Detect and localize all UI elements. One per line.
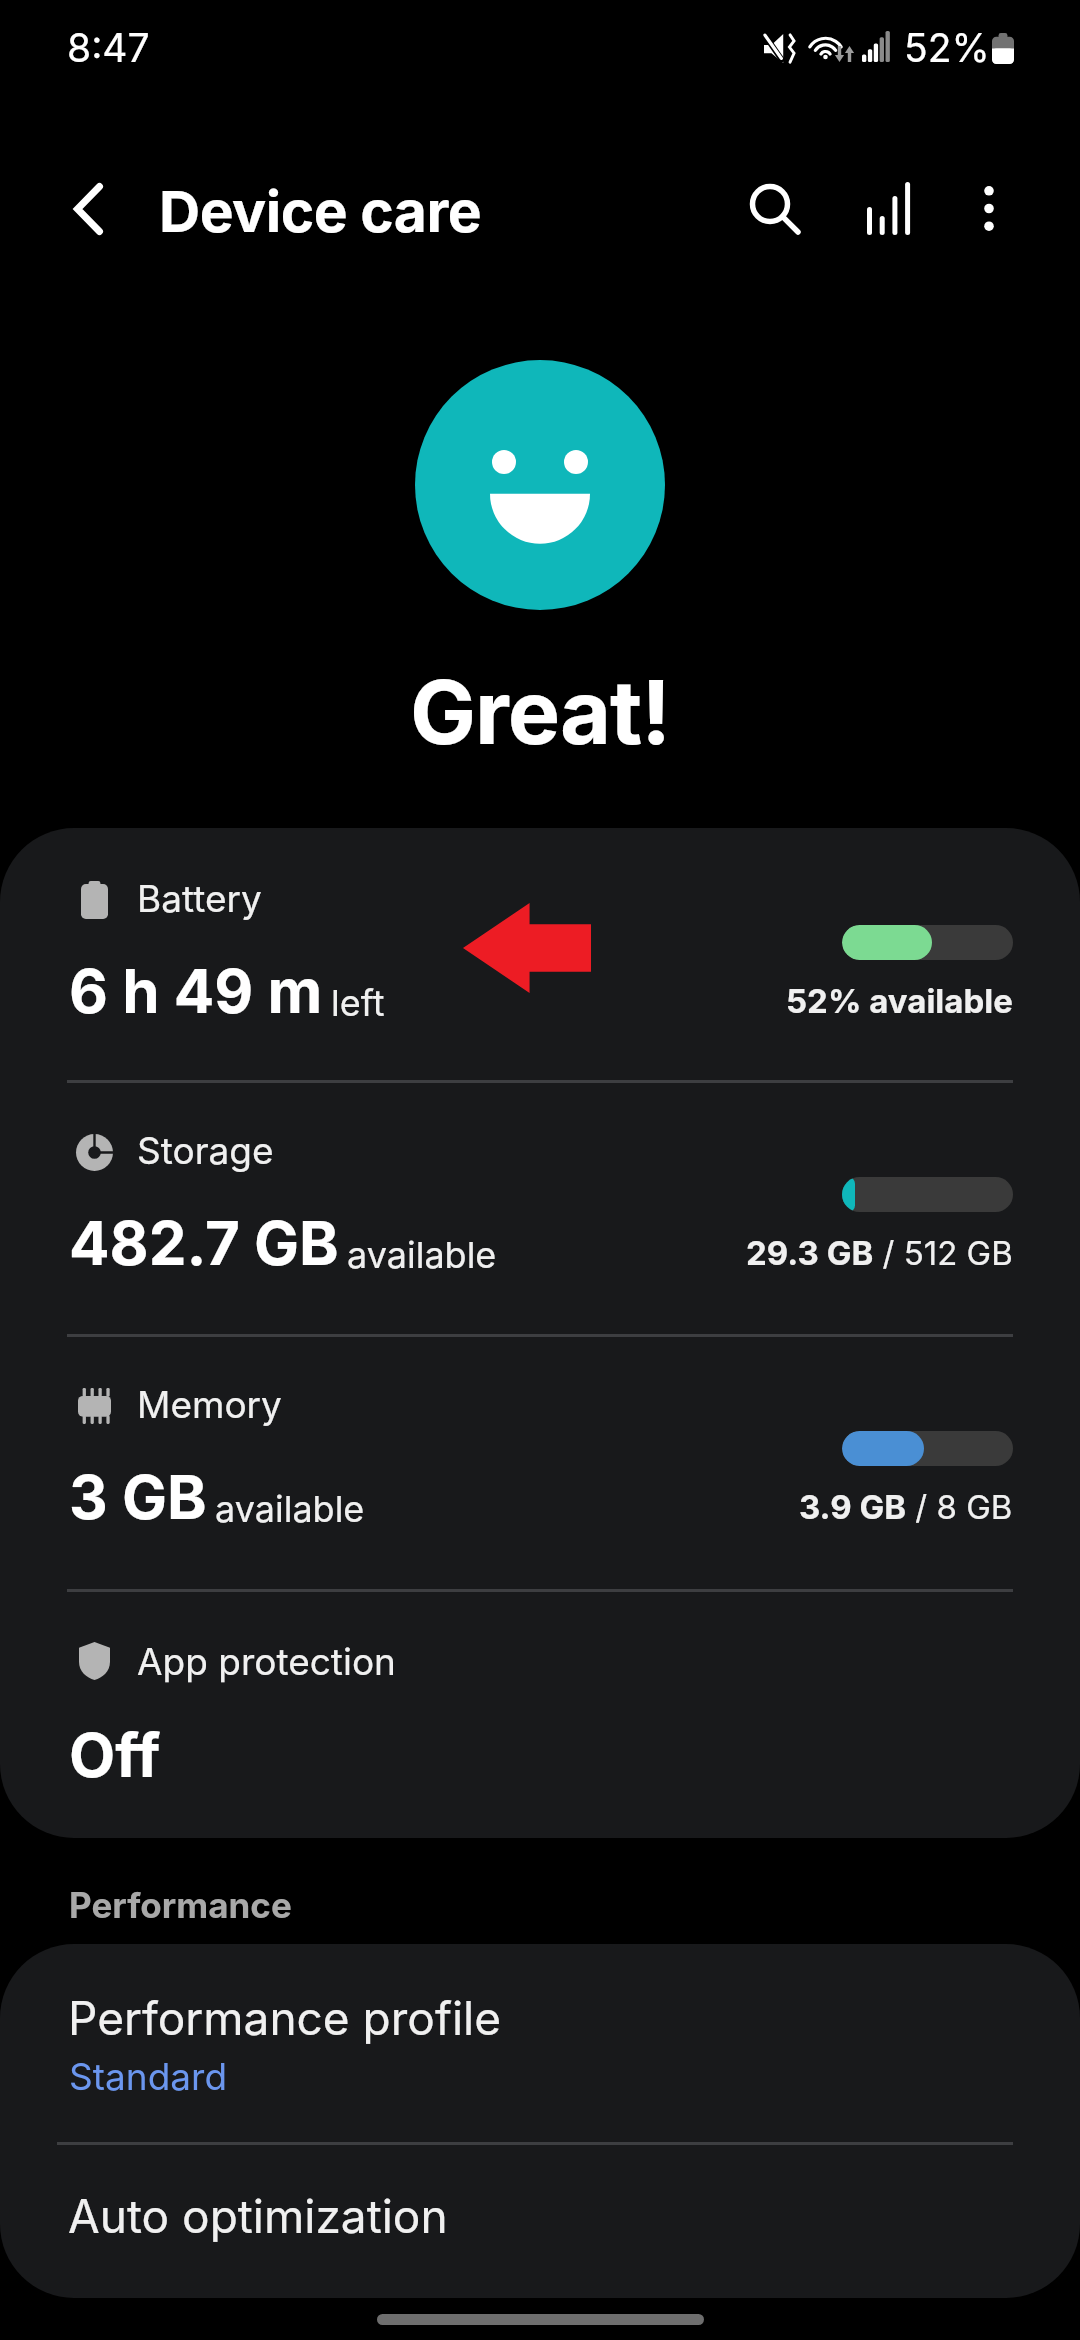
button[interactable]: Storage (0, 1080, 1080, 1332)
staticText: Battery (137, 876, 262, 921)
staticText: 8:47 (67, 24, 150, 71)
button[interactable]: More options (928, 147, 1050, 269)
staticText: available (347, 1233, 497, 1277)
staticText: available (215, 1487, 365, 1531)
staticText: Standard (69, 2054, 228, 2099)
staticText: Performance profile (68, 1990, 502, 2046)
staticText: Performance (69, 1884, 292, 1926)
staticText: 6 h 49 m (69, 955, 323, 1028)
staticText: 3.9 GB / 8 GB (799, 1487, 1013, 1527)
button[interactable]: App protection (0, 1589, 1080, 1838)
staticText: 482.7 GB (69, 1207, 339, 1280)
button[interactable]: Memory (0, 1334, 1080, 1586)
button[interactable]: Performance profile (0, 1944, 1080, 2142)
button[interactable]: Search (714, 148, 836, 270)
staticText: Off (69, 1719, 161, 1792)
staticText: Device care (159, 177, 482, 246)
staticText: 52% (904, 24, 990, 71)
button[interactable]: Navigate up (27, 148, 149, 270)
button[interactable]: Auto optimization (0, 2144, 1080, 2298)
staticText: 52% available (786, 981, 1013, 1021)
button[interactable]: Usage statistics (827, 147, 949, 269)
staticText: left (331, 981, 385, 1025)
staticText: Great! (410, 659, 671, 765)
staticText: Storage (137, 1128, 274, 1173)
staticText: App protection (137, 1639, 396, 1684)
button[interactable]: Battery (0, 828, 1080, 1080)
staticText: 3 GB (69, 1461, 207, 1534)
staticText: 29.3 GB / 512 GB (746, 1233, 1013, 1273)
staticText: Auto optimization (68, 2188, 448, 2244)
staticText: Memory (137, 1382, 282, 1427)
